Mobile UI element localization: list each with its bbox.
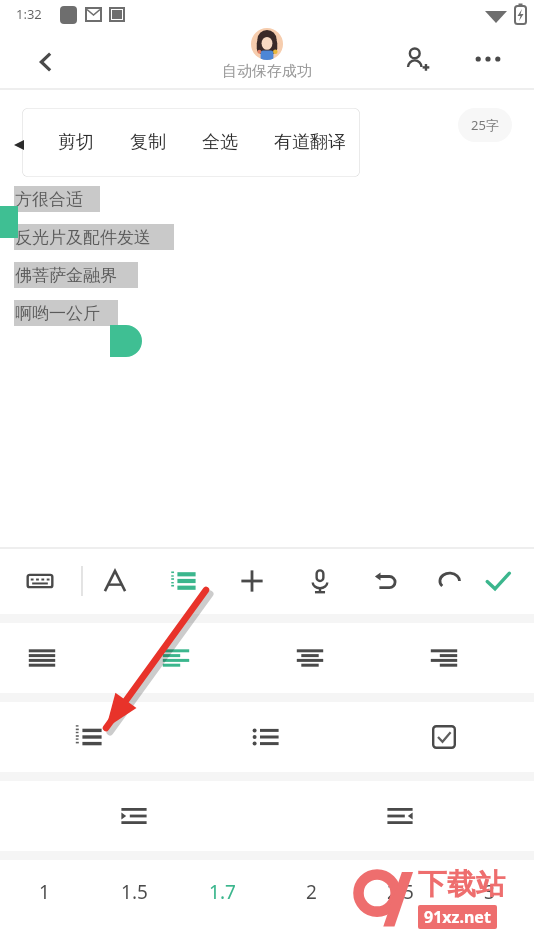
- button[interactable]: Back: [22, 38, 70, 86]
- button[interactable]: Add member: [393, 35, 441, 83]
- staticText: 剪切: [58, 131, 94, 154]
- button[interactable]: 剪切: [46, 117, 106, 168]
- staticText: 啊哟一公斤: [15, 303, 100, 324]
- staticText: 1.5: [121, 879, 148, 905]
- button[interactable]: 2: [283, 868, 339, 916]
- button[interactable]: Align justify: [18, 634, 66, 682]
- button[interactable]: Increase indent: [110, 792, 158, 840]
- staticText: 3: [484, 879, 495, 905]
- button[interactable]: 1: [16, 868, 72, 916]
- button[interactable]: Checklist: [420, 713, 468, 761]
- button[interactable]: Done: [474, 557, 522, 605]
- button[interactable]: More options: [464, 35, 512, 83]
- staticText: 2.5: [387, 879, 414, 905]
- button[interactable]: Redo: [426, 557, 474, 605]
- staticText: 复制: [130, 131, 166, 154]
- button[interactable]: 25字: [458, 108, 512, 142]
- button[interactable]: Align right: [420, 634, 468, 682]
- staticText: 91xz.net: [424, 906, 491, 928]
- staticText: 方很合适: [15, 189, 83, 210]
- button[interactable]: Undo: [361, 557, 409, 605]
- staticText: 下载站: [418, 866, 505, 903]
- staticText: 1: [39, 879, 50, 905]
- staticText: 有道翻译: [274, 131, 346, 154]
- button[interactable]: 3: [461, 868, 517, 916]
- button[interactable]: Font style: [91, 557, 139, 605]
- staticText: 反光片及配件发送: [15, 227, 151, 248]
- button[interactable]: Insert: [228, 557, 276, 605]
- staticText: 1:32: [16, 5, 42, 23]
- button[interactable]: Avatar: [251, 28, 283, 60]
- staticText: 25字: [471, 116, 499, 134]
- button[interactable]: Keyboard: [16, 557, 64, 605]
- button[interactable]: 1.7: [194, 868, 250, 916]
- button[interactable]: Align center: [286, 634, 334, 682]
- button[interactable]: 复制: [118, 117, 178, 168]
- staticText: 全选: [202, 131, 238, 154]
- button[interactable]: 全选: [190, 117, 250, 168]
- button[interactable]: Bulleted list: [242, 713, 290, 761]
- staticText: 2: [306, 879, 317, 905]
- staticText: 1.7: [209, 879, 236, 905]
- button[interactable]: Decrease indent: [376, 792, 424, 840]
- button[interactable]: Numbered list: [65, 713, 113, 761]
- button[interactable]: Align left: [152, 634, 200, 682]
- button[interactable]: Voice input: [296, 557, 344, 605]
- button[interactable]: List format: [159, 557, 207, 605]
- staticText: 佛菩萨金融界: [15, 265, 117, 286]
- button[interactable]: 1.5: [106, 868, 162, 916]
- button[interactable]: 有道翻译: [262, 117, 358, 168]
- staticText: 自动保存成功: [222, 62, 312, 81]
- button[interactable]: 2.5: [372, 868, 428, 916]
